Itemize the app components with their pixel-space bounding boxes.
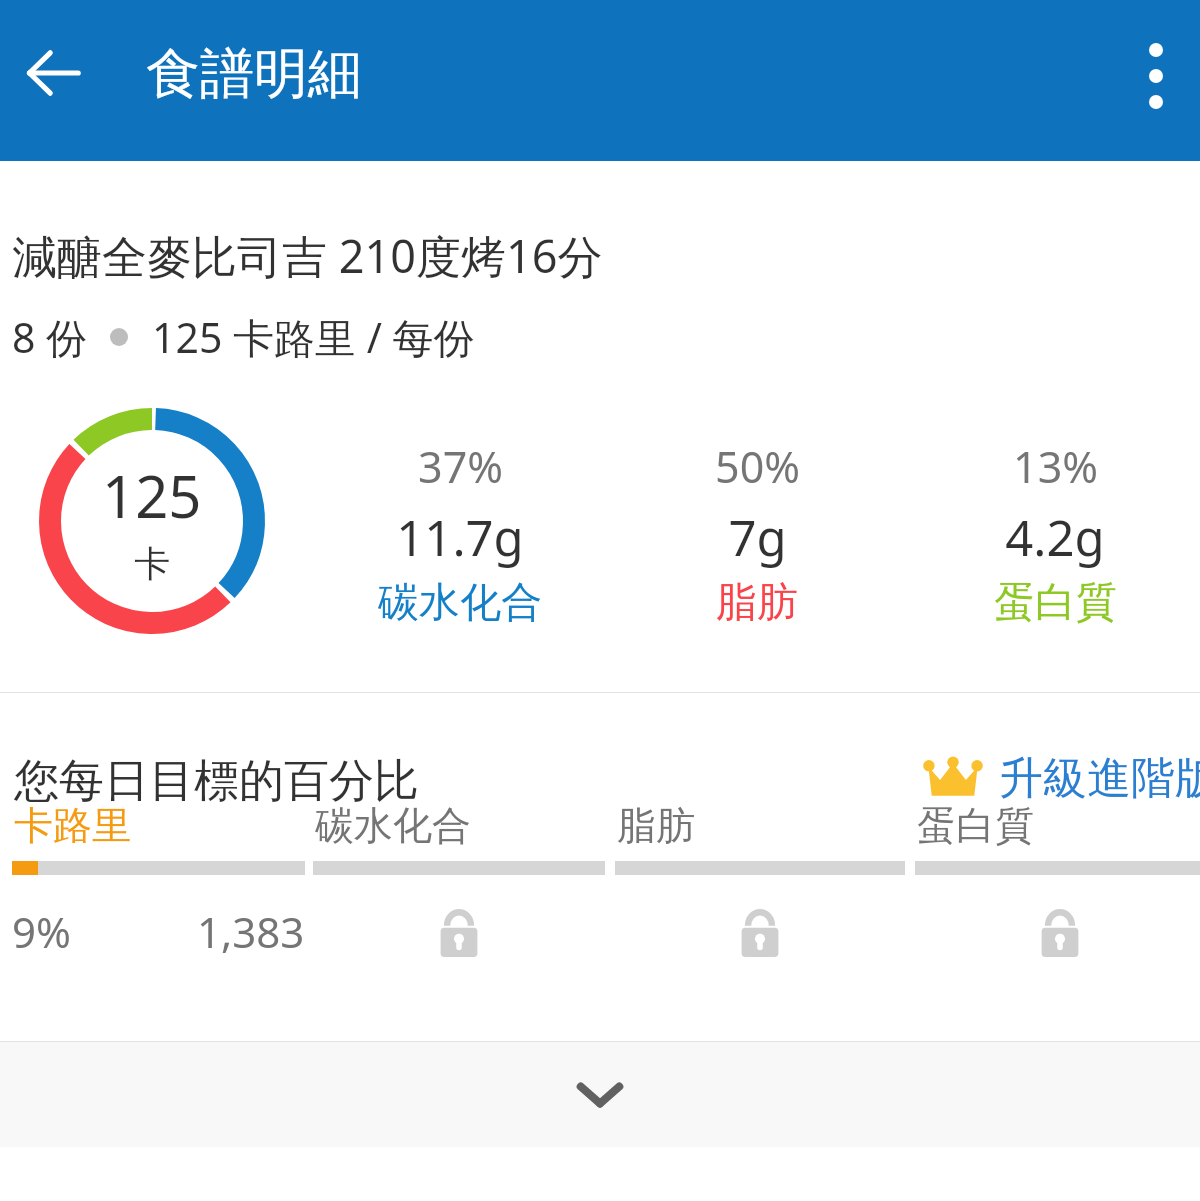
button[interactable]: Back: [12, 32, 94, 114]
staticText: 食譜明細: [146, 40, 362, 108]
button[interactable]: Expand: [0, 1042, 1200, 1147]
staticText: 蛋白質: [994, 577, 1117, 629]
staticText: 碳水化合: [378, 577, 542, 629]
staticText: 脂肪: [617, 801, 695, 850]
staticText: 碳水化合: [315, 801, 471, 850]
staticText: 蛋白質: [917, 801, 1034, 850]
staticText: 37%: [418, 437, 503, 496]
staticText: 您每日目標的百分比: [14, 753, 419, 810]
staticText: 減醣全麥比司吉 210度烤16分: [12, 225, 603, 286]
button[interactable]: 13%: [925, 437, 1185, 629]
staticText: 50%: [715, 437, 800, 496]
staticText: 卡: [134, 541, 170, 586]
button[interactable]: 蛋白質: [915, 801, 1200, 991]
staticText: 升級進階版: [999, 751, 1200, 806]
staticText: 11.7g: [396, 504, 524, 571]
staticText: 8 份: [12, 309, 88, 365]
button[interactable]: 37%: [330, 437, 590, 629]
button[interactable]: 卡路里: [12, 801, 305, 991]
staticText: 4.2g: [1005, 504, 1105, 571]
staticText: 1,383: [197, 903, 305, 960]
button[interactable]: 升級進階版: [925, 751, 1200, 806]
button[interactable]: More options: [1114, 34, 1198, 118]
staticText: 13%: [1013, 437, 1098, 496]
staticText: 卡路里: [14, 801, 131, 850]
staticText: 9%: [12, 903, 71, 960]
staticText: 脂肪: [716, 577, 798, 629]
staticText: 125 卡路里 / 每份: [152, 309, 475, 365]
staticText: 7g: [728, 504, 787, 571]
button[interactable]: 碳水化合: [313, 801, 605, 991]
button[interactable]: 脂肪: [615, 801, 905, 991]
staticText: 125: [102, 456, 202, 535]
button[interactable]: 50%: [627, 437, 887, 629]
